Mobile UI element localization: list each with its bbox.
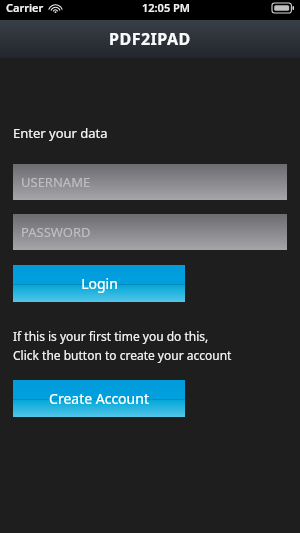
staticText: If this is your first time you do this, <box>13 328 209 344</box>
staticText: Create Account <box>49 389 149 408</box>
staticText: Enter your data <box>13 124 108 142</box>
staticText: PASSWORD <box>21 223 91 241</box>
staticText: Carrier <box>6 0 44 15</box>
button[interactable]: USERNAME <box>13 164 287 200</box>
other: Wi-Fi signal <box>49 2 62 13</box>
button[interactable]: Login <box>13 265 185 302</box>
staticText: USERNAME <box>21 173 91 191</box>
button[interactable]: Create Account <box>13 380 185 417</box>
button[interactable]: PASSWORD <box>13 214 287 250</box>
other: Battery <box>272 3 294 13</box>
staticText: PDF2IPAD <box>109 28 191 50</box>
staticText: Click the button to create your account <box>13 347 232 363</box>
staticText: Login <box>81 274 118 293</box>
staticText: 12:05 PM <box>142 0 191 15</box>
